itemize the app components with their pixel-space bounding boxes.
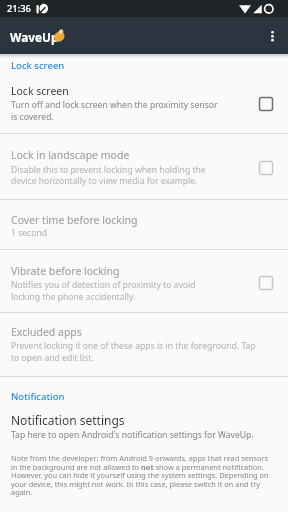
staticText: to open and edit list. (11, 352, 94, 364)
staticText: Notification (11, 390, 65, 403)
staticText: Lock screen (11, 59, 65, 72)
staticText: Vibrate before locking (11, 264, 120, 278)
staticText: 1 second (11, 227, 48, 239)
staticText: Prevent locking if one of these apps is … (11, 340, 256, 352)
staticText: 21:36 (7, 2, 31, 15)
staticText: locking the phone accidentally. (11, 291, 136, 303)
staticText: in the background are not allowed to not… (11, 462, 264, 472)
staticText: Excluded apps (11, 325, 82, 339)
button[interactable]: Vibrate before locking (0, 250, 288, 312)
staticText: Lock in landscape mode (11, 148, 130, 162)
staticText: Turn off and lock screen when the proxim… (11, 99, 218, 111)
button[interactable] (256, 19, 288, 52)
button[interactable]: Cover time before locking (0, 200, 288, 249)
button[interactable]: Notification settings (0, 406, 288, 446)
staticText: device horizontally to view media for ex… (11, 175, 198, 187)
staticText: Notifies you of detection of proximity t… (11, 279, 196, 291)
staticText: your device, this might not work. In thi… (11, 479, 260, 489)
staticText: Disable this to prevent locking when hol… (11, 164, 206, 176)
button[interactable]: Lock screen (0, 76, 288, 133)
staticText: Cover time before locking (11, 213, 138, 227)
staticText: is covered. (11, 111, 54, 123)
staticText: again. (11, 487, 33, 497)
staticText: WaveUp (10, 29, 59, 45)
staticText: Notification settings (11, 412, 125, 428)
staticText: Lock screen (11, 84, 69, 98)
staticText: However, you can hide it yourself using … (11, 470, 269, 480)
staticText: Note from the developer: from Android 9 … (11, 453, 269, 463)
button[interactable]: Excluded apps (0, 312, 288, 375)
staticText: Tap here to open Android's notification … (11, 429, 254, 441)
button[interactable]: Lock in landscape mode (0, 134, 288, 199)
